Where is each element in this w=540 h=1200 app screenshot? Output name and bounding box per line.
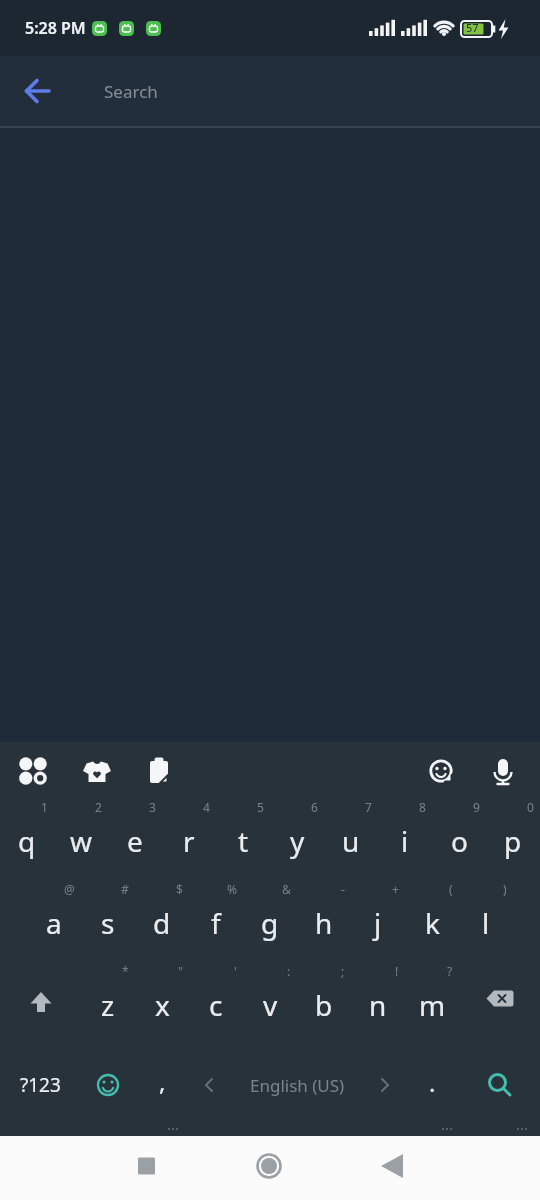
staticText: 57 xyxy=(466,20,479,35)
staticText: # xyxy=(121,881,129,897)
staticText: * xyxy=(122,963,129,979)
staticText: i xyxy=(401,822,409,860)
button[interactable]: % xyxy=(189,880,243,962)
staticText: ) xyxy=(503,881,507,897)
button[interactable]: . xyxy=(405,1044,459,1126)
staticText: w xyxy=(70,822,93,860)
staticText: d xyxy=(153,904,171,942)
button[interactable]: " xyxy=(135,962,189,1044)
button[interactable]: 3 xyxy=(108,798,162,880)
staticText: m xyxy=(419,986,446,1024)
staticText: j xyxy=(374,904,382,942)
button[interactable]: 0 xyxy=(486,798,540,880)
staticText: h xyxy=(315,904,333,942)
button[interactable]: : xyxy=(243,962,297,1044)
staticText: o xyxy=(451,822,468,860)
staticText: c xyxy=(209,986,223,1024)
button[interactable]: ' xyxy=(189,962,243,1044)
staticText: 6 xyxy=(311,799,318,815)
staticText: l xyxy=(482,904,490,942)
staticText: - xyxy=(341,881,345,897)
staticText: % xyxy=(227,881,237,897)
button[interactable]: 4 xyxy=(162,798,216,880)
staticText: r xyxy=(183,822,195,860)
staticText: & xyxy=(282,881,291,897)
button[interactable]: ! xyxy=(351,962,405,1044)
staticText: 0 xyxy=(527,799,534,815)
staticText: ?123 xyxy=(20,1072,61,1098)
button[interactable]: 1 xyxy=(0,798,54,880)
staticText: g xyxy=(261,904,279,942)
staticText: k xyxy=(425,904,440,942)
button[interactable] xyxy=(124,742,186,798)
button[interactable]: , xyxy=(135,1044,189,1126)
staticText: q xyxy=(18,822,36,860)
button[interactable]: 9 xyxy=(432,798,486,880)
staticText: : xyxy=(287,963,291,979)
button[interactable]: 5 xyxy=(216,798,270,880)
staticText: 9 xyxy=(473,799,480,815)
button[interactable] xyxy=(459,962,540,1044)
button[interactable] xyxy=(180,1136,360,1200)
button[interactable] xyxy=(0,742,62,798)
button[interactable]: + xyxy=(351,880,405,962)
staticText: 2 xyxy=(95,799,102,815)
button[interactable]: 7 xyxy=(324,798,378,880)
staticText: ; xyxy=(341,963,345,979)
staticText: a xyxy=(46,904,62,942)
staticText: Search xyxy=(104,80,158,103)
button[interactable]: & xyxy=(243,880,297,962)
staticText: 7 xyxy=(365,799,372,815)
button[interactable] xyxy=(16,69,60,113)
staticText: 1 xyxy=(41,799,48,815)
staticText: n xyxy=(369,986,387,1024)
staticText: + xyxy=(392,881,399,897)
staticText: $ xyxy=(176,881,183,897)
staticText: f xyxy=(211,904,221,942)
staticText: 5 xyxy=(257,799,264,815)
button[interactable]: ( xyxy=(405,880,459,962)
staticText: p xyxy=(504,822,522,860)
button[interactable]: ; xyxy=(297,962,351,1044)
staticText: y xyxy=(290,822,305,860)
button[interactable]: Search xyxy=(104,69,540,113)
button[interactable]: ? xyxy=(405,962,459,1044)
button[interactable] xyxy=(416,742,478,798)
staticText: b xyxy=(315,986,333,1024)
button[interactable] xyxy=(81,1044,135,1126)
button[interactable] xyxy=(360,1136,540,1200)
button[interactable]: * xyxy=(81,962,135,1044)
staticText: ? xyxy=(447,963,453,979)
staticText: 8 xyxy=(419,799,426,815)
button[interactable] xyxy=(62,742,124,798)
staticText: ' xyxy=(234,963,237,979)
button[interactable]: 6 xyxy=(270,798,324,880)
button[interactable]: $ xyxy=(135,880,189,962)
button[interactable]: ?123 xyxy=(0,1044,81,1126)
button[interactable]: ) xyxy=(459,880,513,962)
staticText: English (US) xyxy=(250,1074,345,1097)
button[interactable] xyxy=(459,1044,540,1126)
button[interactable]: # xyxy=(81,880,135,962)
button[interactable] xyxy=(0,962,81,1044)
staticText: , xyxy=(159,1065,166,1098)
button[interactable] xyxy=(478,742,540,798)
button[interactable]: 2 xyxy=(54,798,108,880)
staticText: v xyxy=(263,986,278,1024)
staticText: ( xyxy=(449,881,453,897)
staticText: 5:28 PM xyxy=(25,17,86,39)
button[interactable]: - xyxy=(297,880,351,962)
button[interactable]: 8 xyxy=(378,798,432,880)
staticText: 3 xyxy=(149,799,156,815)
staticText: . xyxy=(429,1066,436,1099)
button[interactable]: @ xyxy=(27,880,81,962)
staticText: 4 xyxy=(203,799,210,815)
staticText: s xyxy=(101,904,115,942)
button[interactable] xyxy=(0,1136,180,1200)
staticText: x xyxy=(155,986,170,1024)
staticText: ! xyxy=(395,963,399,979)
staticText: e xyxy=(127,822,143,860)
staticText: u xyxy=(342,822,360,860)
button[interactable]: English (US) xyxy=(189,1044,405,1126)
staticText: z xyxy=(101,986,115,1024)
